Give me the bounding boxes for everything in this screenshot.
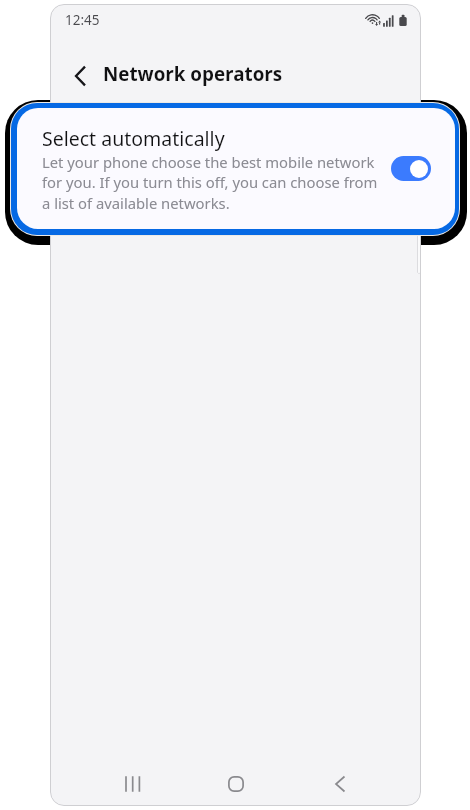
staticText: Select automatically bbox=[42, 125, 225, 152]
button[interactable]: Back bbox=[60, 55, 101, 96]
staticText: Network operators bbox=[103, 61, 283, 87]
staticText: Let your phone choose the best mobile ne… bbox=[42, 152, 382, 214]
button[interactable]: Recents bbox=[113, 764, 153, 804]
button[interactable]: Select automatically bbox=[17, 108, 455, 231]
button[interactable]: Back bbox=[320, 764, 360, 804]
staticText: 12:45 bbox=[65, 11, 100, 29]
button[interactable]: Home bbox=[216, 764, 256, 804]
button[interactable]: Select automatically bbox=[391, 156, 431, 181]
